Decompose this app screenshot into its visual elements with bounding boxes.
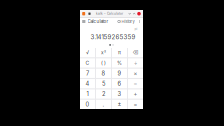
staticText: C	[85, 60, 89, 66]
button[interactable]: x²	[96, 48, 111, 57]
button[interactable]: 2	[96, 89, 111, 99]
staticText: 0	[85, 101, 89, 108]
staticText: 1	[86, 91, 88, 97]
staticText: kalk – Calculator	[96, 12, 123, 15]
button[interactable]: ( )	[96, 58, 111, 68]
staticText: 8	[101, 70, 105, 77]
staticText: 6	[117, 80, 121, 87]
button[interactable]: 5	[96, 79, 111, 88]
button[interactable]: 3	[112, 89, 127, 99]
button[interactable]: 7	[80, 69, 95, 78]
staticText: 2	[102, 91, 105, 97]
button[interactable]: ×	[128, 69, 143, 78]
staticText: .	[102, 101, 104, 108]
staticText: 5	[102, 80, 105, 87]
staticText: x²	[101, 50, 106, 55]
button[interactable]: Minimize	[129, 12, 131, 15]
staticText: ⌫	[132, 50, 138, 55]
staticText: ±	[117, 101, 121, 108]
staticText: ÷	[134, 60, 137, 66]
button[interactable]: −	[128, 79, 143, 88]
button[interactable]: √	[80, 48, 95, 57]
staticText: 4	[85, 80, 89, 87]
staticText: 9	[117, 70, 121, 77]
button[interactable]: %	[112, 58, 127, 68]
button[interactable]: =	[128, 100, 143, 109]
button[interactable]: Maximize	[133, 12, 135, 15]
button[interactable]: Close	[137, 12, 141, 15]
button[interactable]: π	[112, 48, 127, 57]
button[interactable]: ⌫	[128, 48, 143, 57]
staticText: π	[118, 50, 121, 55]
staticText: √	[86, 50, 89, 55]
button[interactable]: 1	[80, 89, 95, 99]
button[interactable]: ÷	[128, 58, 143, 68]
button[interactable]: 8	[96, 69, 111, 78]
button[interactable]: ±	[112, 100, 127, 109]
staticText: ( )	[101, 60, 106, 66]
button[interactable]: 0	[80, 100, 95, 109]
staticText: Calculator	[88, 19, 109, 24]
staticText: 3.14159265359	[90, 33, 135, 41]
staticText: 7	[86, 70, 89, 77]
button[interactable]: History	[118, 19, 134, 24]
staticText: pi	[134, 27, 137, 31]
button[interactable]: 4	[80, 79, 95, 88]
button[interactable]: C	[80, 58, 95, 68]
staticText: +	[133, 91, 137, 97]
staticText: %	[117, 60, 122, 66]
button[interactable]: More options	[138, 19, 141, 23]
staticText: −	[133, 80, 137, 87]
button[interactable]: 6	[112, 79, 127, 88]
staticText: =	[133, 101, 137, 108]
button[interactable]: 9	[112, 69, 127, 78]
button[interactable]: +	[128, 89, 143, 99]
button[interactable]: .	[96, 100, 111, 109]
staticText: 3	[117, 91, 121, 97]
staticText: ×	[133, 70, 137, 77]
staticText: History	[121, 19, 134, 24]
button[interactable]: Menu	[82, 20, 85, 23]
